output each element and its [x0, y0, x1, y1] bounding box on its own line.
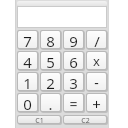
- staticText: C1: [35, 116, 44, 123]
- staticText: =: [69, 94, 78, 111]
- button[interactable]: 5: [40, 51, 61, 70]
- button[interactable]: 1: [17, 72, 38, 91]
- button[interactable]: 8: [40, 30, 61, 49]
- staticText: 9: [69, 31, 78, 48]
- button[interactable]: /: [86, 30, 107, 49]
- staticText: 1: [23, 73, 32, 90]
- staticText: 4: [23, 52, 32, 69]
- button[interactable]: +: [86, 93, 107, 112]
- button[interactable]: C1: [17, 115, 61, 124]
- staticText: C2: [81, 116, 90, 123]
- button[interactable]: .: [40, 93, 61, 112]
- staticText: 3: [69, 73, 78, 90]
- button[interactable]: 0: [17, 93, 38, 112]
- button[interactable]: 7: [17, 30, 38, 49]
- button[interactable]: =: [63, 93, 84, 112]
- staticText: 6: [69, 52, 78, 69]
- button[interactable]: 6: [63, 51, 84, 70]
- staticText: .: [48, 94, 53, 111]
- button[interactable]: C2: [63, 115, 107, 124]
- staticText: 8: [46, 31, 55, 48]
- button[interactable]: x: [86, 51, 107, 70]
- button[interactable]: -: [86, 72, 107, 91]
- button[interactable]: 3: [63, 72, 84, 91]
- staticText: +: [92, 94, 101, 111]
- staticText: 0: [23, 94, 32, 111]
- staticText: 2: [46, 73, 55, 90]
- button[interactable]: 9: [63, 30, 84, 49]
- button[interactable]: 4: [17, 51, 38, 70]
- staticText: /: [94, 31, 100, 48]
- staticText: 5: [46, 52, 55, 69]
- staticText: 7: [23, 31, 32, 48]
- button[interactable]: 2: [40, 72, 61, 91]
- staticText: -: [94, 73, 99, 90]
- staticText: x: [93, 52, 100, 69]
